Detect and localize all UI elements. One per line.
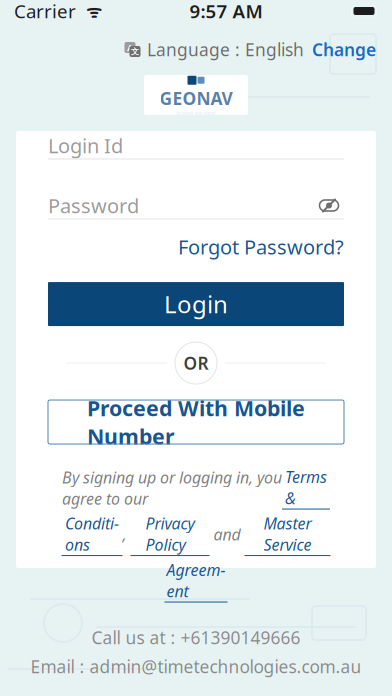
staticText: Password bbox=[48, 192, 139, 219]
button[interactable]: Show password bbox=[314, 193, 344, 217]
staticText: Privacy Policy bbox=[145, 512, 194, 555]
staticText: 9:57 AM bbox=[189, 0, 262, 23]
staticText: GEONAV bbox=[159, 87, 232, 110]
staticText: 文 bbox=[131, 47, 139, 56]
staticText: Proceed With Mobile Number bbox=[87, 394, 305, 450]
staticText: Carrier bbox=[14, 0, 76, 23]
staticText: ▭ ▭▭▭ ▭▭ ▭▭▭ bbox=[176, 111, 215, 115]
button[interactable]: Language English bbox=[124, 38, 304, 61]
staticText: Conditions bbox=[65, 512, 119, 555]
staticText: By signing up or logging in, you agree t… bbox=[62, 467, 282, 509]
staticText: Login bbox=[164, 288, 228, 320]
staticText: ᯤ bbox=[76, 0, 102, 22]
staticText: Forgot Password? bbox=[178, 233, 344, 260]
staticText: Master Service bbox=[263, 512, 311, 555]
staticText: Email : admin@timetechnologies.com.au bbox=[30, 655, 361, 678]
staticText: Language : English bbox=[147, 38, 304, 61]
staticText: Agreement bbox=[166, 559, 225, 601]
button[interactable]: Master Service bbox=[244, 512, 330, 556]
button[interactable]: Change bbox=[304, 38, 376, 61]
staticText: Terms & bbox=[285, 466, 327, 509]
button[interactable]: Agreement bbox=[164, 559, 227, 602]
staticText: OR bbox=[183, 351, 208, 374]
staticText: A bbox=[127, 41, 133, 54]
staticText: , bbox=[122, 524, 130, 545]
button[interactable]: Forgot Password? bbox=[178, 233, 344, 260]
staticText: and bbox=[209, 524, 244, 545]
button[interactable]: Privacy Policy bbox=[130, 512, 209, 556]
staticText: Login Id bbox=[48, 132, 123, 159]
button[interactable]: Proceed With Mobile Number bbox=[48, 400, 344, 444]
button[interactable]: Terms & bbox=[282, 466, 330, 510]
staticText: Call us at : +61390149666 bbox=[91, 626, 300, 649]
button[interactable]: Login bbox=[48, 282, 344, 326]
button[interactable]: Conditions bbox=[61, 512, 122, 556]
staticText: Change bbox=[312, 38, 376, 61]
